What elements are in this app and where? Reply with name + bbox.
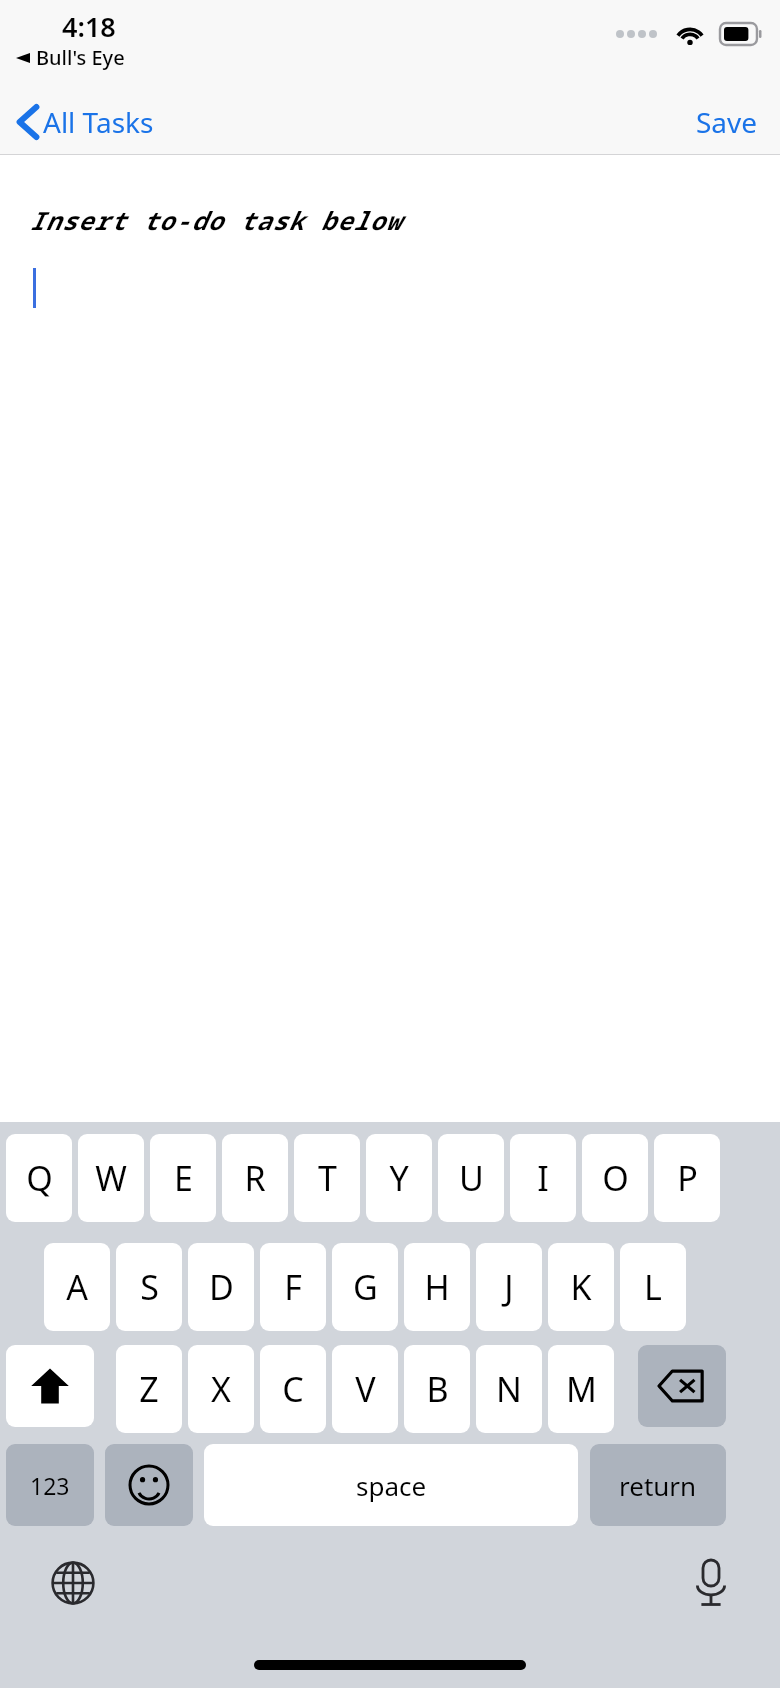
staticText: T — [318, 1155, 337, 1201]
button[interactable]: Y — [366, 1134, 432, 1222]
staticText: K — [570, 1264, 592, 1310]
button[interactable]: F — [260, 1243, 326, 1331]
staticText: 4:18 — [62, 8, 116, 45]
staticText: M — [566, 1366, 597, 1412]
staticText: Z — [139, 1366, 159, 1412]
staticText: P — [677, 1155, 698, 1201]
button[interactable]: H — [404, 1243, 470, 1331]
button[interactable]: O — [582, 1134, 648, 1222]
button[interactable]: Dictation — [682, 1554, 740, 1612]
button[interactable]: X — [188, 1345, 254, 1433]
staticText: space — [356, 1468, 427, 1503]
button[interactable]: V — [332, 1345, 398, 1433]
button[interactable]: Backspace — [638, 1345, 726, 1427]
button[interactable]: All Tasks — [0, 97, 166, 147]
staticText: A — [66, 1264, 88, 1310]
staticText: X — [211, 1366, 231, 1412]
staticText: 123 — [30, 1470, 70, 1501]
staticText: F — [284, 1264, 302, 1310]
staticText: Q — [26, 1155, 53, 1201]
staticText: Insert to-do task below — [29, 203, 402, 237]
button[interactable]: 123 — [6, 1444, 94, 1526]
button[interactable]: U — [438, 1134, 504, 1222]
button[interactable]: C — [260, 1345, 326, 1433]
button[interactable]: R — [222, 1134, 288, 1222]
button[interactable]: N — [476, 1345, 542, 1433]
button[interactable]: E — [150, 1134, 216, 1222]
button[interactable]: K — [548, 1243, 614, 1331]
button[interactable]: S — [116, 1243, 182, 1331]
button[interactable]: L — [620, 1243, 686, 1331]
staticText: G — [353, 1264, 378, 1310]
staticText: W — [95, 1155, 127, 1201]
staticText: Y — [389, 1155, 409, 1201]
staticText: C — [282, 1366, 304, 1412]
button[interactable]: space — [204, 1444, 578, 1526]
button[interactable]: G — [332, 1243, 398, 1331]
button[interactable]: Save — [674, 95, 780, 149]
staticText: Bull's Eye — [36, 44, 125, 71]
staticText: J — [504, 1264, 514, 1310]
staticText: E — [174, 1155, 193, 1201]
staticText: H — [424, 1264, 450, 1310]
staticText: Save — [696, 103, 758, 141]
staticText: I — [537, 1155, 549, 1201]
staticText: O — [602, 1155, 629, 1201]
button[interactable]: A — [44, 1243, 110, 1331]
button[interactable]: Emoji — [105, 1444, 193, 1526]
button[interactable]: Z — [116, 1345, 182, 1433]
button[interactable]: Change keyboard language — [44, 1554, 102, 1612]
staticText: S — [140, 1264, 159, 1310]
button[interactable]: P — [654, 1134, 720, 1222]
button[interactable]: B — [404, 1345, 470, 1433]
button[interactable]: M — [548, 1345, 614, 1433]
staticText: D — [209, 1264, 234, 1310]
staticText: N — [496, 1366, 522, 1412]
staticText: B — [426, 1366, 449, 1412]
staticText: return — [619, 1468, 697, 1503]
button[interactable]: J — [476, 1243, 542, 1331]
button[interactable]: Q — [6, 1134, 72, 1222]
staticText: All Tasks — [43, 103, 154, 141]
button[interactable]: W — [78, 1134, 144, 1222]
button[interactable]: return — [590, 1444, 726, 1526]
staticText: U — [459, 1155, 484, 1201]
button[interactable]: T — [294, 1134, 360, 1222]
button[interactable]: Shift — [6, 1345, 94, 1427]
staticText: L — [644, 1264, 662, 1310]
staticText: R — [244, 1155, 266, 1201]
staticText: V — [355, 1366, 376, 1412]
button[interactable]: I — [510, 1134, 576, 1222]
button[interactable]: D — [188, 1243, 254, 1331]
